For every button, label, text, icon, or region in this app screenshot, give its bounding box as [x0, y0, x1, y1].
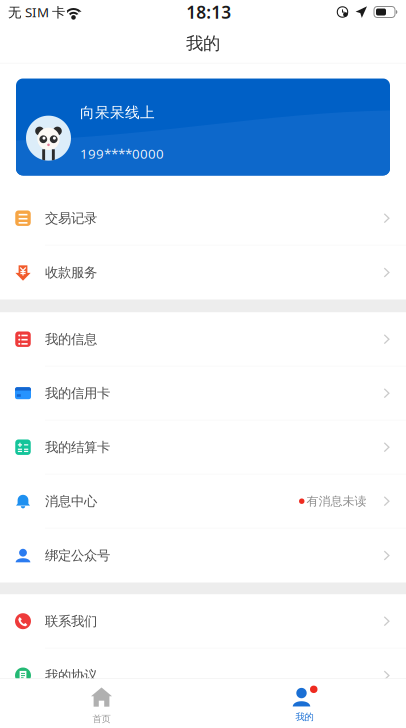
- button[interactable]: 我的结算卡: [0, 420, 406, 474]
- staticText: 我的: [186, 33, 220, 54]
- staticText: 交易记录: [45, 210, 97, 226]
- staticText: 有消息未读: [306, 494, 366, 508]
- staticText: 我的结算卡: [45, 439, 110, 455]
- button[interactable]: 向呆呆线上: [16, 78, 390, 175]
- staticText: 向呆呆线上: [80, 104, 155, 122]
- staticText: 联系我们: [45, 613, 97, 629]
- staticText: 绑定公众号: [45, 547, 110, 564]
- button[interactable]: 联系我们: [0, 594, 406, 648]
- staticText: 我的协议: [45, 667, 97, 684]
- button[interactable]: 我的信用卡: [0, 366, 406, 420]
- staticText: 首页: [92, 713, 110, 725]
- staticText: 我的信用卡: [45, 385, 110, 401]
- button[interactable]: 绑定公众号: [0, 528, 406, 582]
- button[interactable]: 首页: [0, 679, 203, 728]
- button[interactable]: 我的: [203, 679, 406, 728]
- button[interactable]: 我的信息: [0, 312, 406, 366]
- staticText: 199****0000: [80, 145, 164, 162]
- button[interactable]: 交易记录: [0, 191, 406, 245]
- staticText: 我的: [295, 711, 313, 723]
- button[interactable]: 我的协议: [0, 648, 406, 702]
- button[interactable]: 收款服务: [0, 245, 406, 299]
- staticText: 我的信息: [45, 331, 97, 347]
- staticText: 消息中心: [45, 493, 97, 509]
- staticText: 18:13: [186, 0, 231, 23]
- staticText: 无 SIM 卡: [8, 3, 65, 21]
- staticText: 收款服务: [45, 264, 97, 281]
- button[interactable]: 消息中心: [0, 474, 406, 528]
